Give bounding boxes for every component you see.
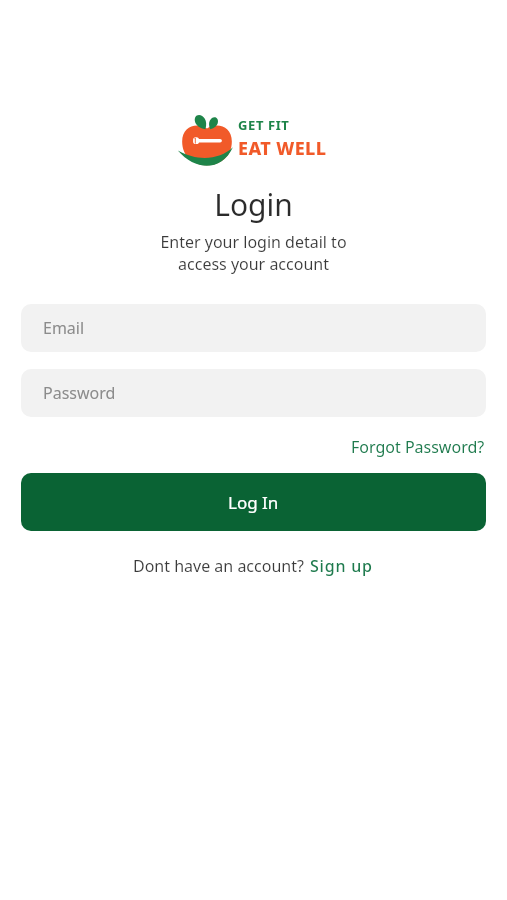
other: Get Fit Eat Well logo xyxy=(180,107,234,169)
staticText: Sign up xyxy=(310,555,373,577)
staticText: Email xyxy=(43,317,85,339)
staticText: Log In xyxy=(228,491,279,514)
staticText: EAT WELL xyxy=(238,136,327,161)
button[interactable]: Sign up xyxy=(309,553,374,579)
button[interactable]: Forgot Password? xyxy=(349,434,487,460)
staticText: GET FIT xyxy=(238,116,290,134)
staticText: Password xyxy=(43,382,116,404)
staticText: Login xyxy=(214,184,293,225)
staticText: Forgot Password? xyxy=(351,436,485,458)
staticText: Dont have an account? xyxy=(133,555,309,577)
button[interactable]: Log In xyxy=(21,473,486,531)
staticText: Enter your login detail to access your a… xyxy=(160,231,347,275)
button[interactable]: Password xyxy=(21,369,486,417)
button[interactable]: Email xyxy=(21,304,486,352)
